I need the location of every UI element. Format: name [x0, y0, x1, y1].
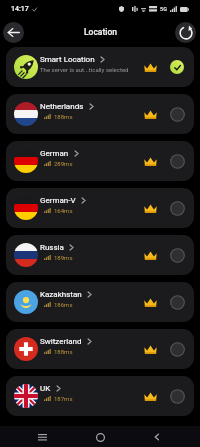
button[interactable]: Refresh: [175, 22, 196, 43]
staticText: The server is aut...tically selected: [40, 66, 129, 73]
staticText: 5G: [160, 6, 167, 12]
button[interactable]: UK: [6, 376, 194, 416]
staticText: 164ms: [54, 207, 73, 214]
staticText: Location: [84, 27, 117, 37]
staticText: Kazakhstan: [40, 290, 82, 299]
button[interactable]: German: [6, 141, 194, 181]
staticText: Smart Location: [40, 55, 95, 64]
staticText: 188ms: [54, 113, 73, 120]
button[interactable]: German-V: [6, 188, 194, 228]
staticText: 187ms: [54, 395, 73, 402]
button[interactable]: Netherlands: [6, 94, 194, 134]
staticText: UK: [40, 384, 51, 393]
staticText: 14:17: [11, 5, 29, 13]
staticText: German: [40, 149, 69, 158]
staticText: Russia: [40, 243, 64, 252]
staticText: 186ms: [54, 301, 73, 308]
staticText: 189ms: [54, 254, 73, 261]
button[interactable]: Back: [3, 22, 24, 43]
staticText: 289ms: [54, 160, 73, 167]
staticText: 188ms: [54, 348, 73, 355]
button[interactable]: Home: [91, 428, 109, 446]
button[interactable]: Recent apps: [33, 428, 51, 446]
staticText: Switzerland: [40, 337, 82, 346]
button[interactable]: Smart Location: [6, 47, 194, 87]
button[interactable]: Kazakhstan: [6, 282, 194, 322]
button[interactable]: Back: [148, 428, 166, 446]
button[interactable]: Russia: [6, 235, 194, 275]
staticText: Netherlands: [40, 102, 84, 111]
staticText: German-V: [40, 196, 76, 205]
button[interactable]: Switzerland: [6, 329, 194, 369]
